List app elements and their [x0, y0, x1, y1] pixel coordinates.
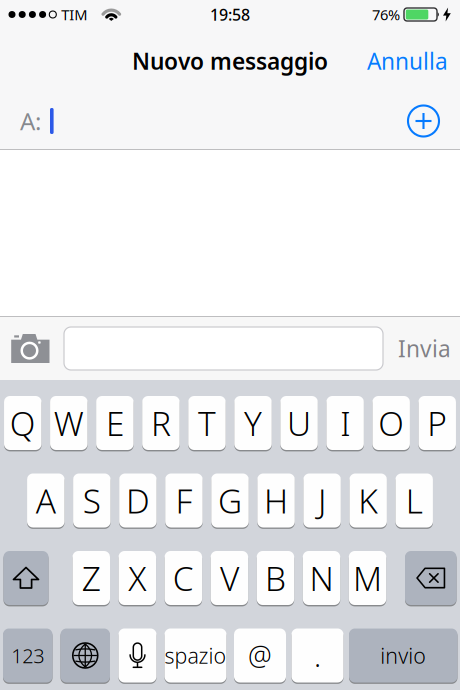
staticText: T: [198, 401, 216, 445]
button[interactable]: Annulla: [367, 46, 448, 76]
staticText: P: [427, 401, 447, 445]
staticText: Invia: [398, 333, 451, 363]
button[interactable]: Fotocamera: [11, 334, 49, 363]
button[interactable]: .: [291, 628, 343, 682]
staticText: .: [314, 636, 321, 675]
staticText: TIM: [61, 5, 87, 24]
staticText: J: [318, 478, 326, 523]
staticText: E: [106, 401, 124, 445]
button[interactable]: Dettatura: [118, 628, 156, 682]
button[interactable]: U: [280, 396, 318, 450]
button[interactable]: Aggiungi contatto: [408, 105, 439, 136]
button[interactable]: A: [27, 473, 65, 527]
button[interactable]: Invia: [398, 333, 451, 363]
staticText: Y: [244, 401, 262, 445]
button[interactable]: spazio: [164, 628, 226, 682]
button[interactable]: L: [395, 473, 433, 527]
button[interactable]: Z: [72, 551, 110, 605]
button[interactable]: D: [119, 473, 157, 527]
button[interactable]: O: [372, 396, 410, 450]
button[interactable]: K: [349, 473, 387, 527]
staticText: Z: [82, 556, 101, 600]
staticText: U: [287, 401, 311, 445]
staticText: S: [83, 478, 101, 523]
staticText: L: [406, 478, 423, 523]
staticText: H: [264, 478, 288, 523]
button[interactable]: X: [118, 551, 156, 605]
button[interactable]: P: [418, 396, 456, 450]
button[interactable]: invio: [349, 628, 457, 682]
button[interactable]: R: [142, 396, 180, 450]
staticText: Nuovo messaggio: [132, 46, 328, 76]
staticText: R: [151, 401, 171, 445]
staticText: M: [353, 556, 382, 600]
staticText: N: [309, 556, 333, 600]
button[interactable]: S: [73, 473, 111, 527]
button[interactable]: F: [165, 473, 203, 527]
staticText: 123: [11, 642, 44, 669]
button[interactable]: C: [165, 551, 202, 605]
button[interactable]: Lingua successiva: [60, 628, 110, 682]
staticText: spazio: [164, 641, 226, 670]
button[interactable]: Maiuscole: [3, 551, 48, 605]
staticText: invio: [380, 641, 426, 670]
button[interactable]: Q: [4, 396, 41, 450]
button[interactable]: N: [303, 551, 340, 605]
button[interactable]: B: [257, 551, 294, 605]
staticText: Annulla: [367, 46, 448, 76]
staticText: @: [248, 638, 272, 673]
button[interactable]: G: [211, 473, 249, 527]
button[interactable]: T: [188, 396, 226, 450]
staticText: 76%: [372, 5, 400, 24]
staticText: A:: [20, 105, 41, 137]
button[interactable]: 123: [3, 628, 52, 682]
staticText: Q: [10, 401, 36, 445]
staticText: G: [218, 478, 242, 523]
button[interactable]: Y: [234, 396, 272, 450]
staticText: I: [340, 401, 350, 445]
staticText: O: [378, 401, 404, 445]
button[interactable]: H: [257, 473, 295, 527]
button[interactable]: W: [50, 396, 88, 450]
staticText: C: [173, 556, 194, 600]
staticText: D: [126, 478, 150, 523]
button[interactable]: E: [96, 396, 134, 450]
staticText: A: [36, 478, 56, 523]
staticText: V: [220, 556, 239, 600]
button[interactable]: Cancella: [405, 551, 456, 605]
staticText: 19:58: [210, 4, 250, 25]
staticText: B: [265, 556, 286, 600]
button[interactable]: I: [326, 396, 364, 450]
button[interactable]: M: [349, 551, 386, 605]
staticText: K: [358, 478, 378, 523]
staticText: X: [128, 556, 146, 600]
button[interactable]: J: [303, 473, 341, 527]
button[interactable]: V: [211, 551, 248, 605]
staticText: F: [175, 478, 192, 523]
staticText: W: [54, 401, 84, 445]
button[interactable]: @: [234, 628, 286, 682]
